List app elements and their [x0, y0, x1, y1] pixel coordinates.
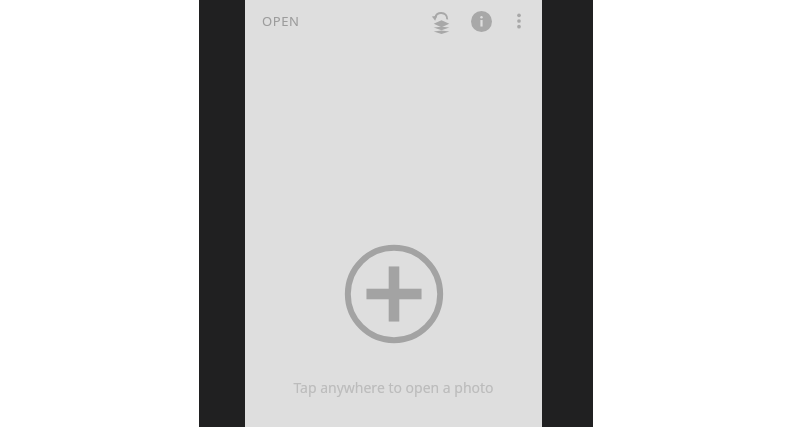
staticText: Tap anywhere to open a photo	[293, 378, 494, 397]
button[interactable]: OPEN	[262, 12, 300, 30]
button[interactable]: OPEN	[245, 0, 542, 427]
button[interactable]: Revert edits	[424, 4, 458, 38]
staticText: OPEN	[262, 12, 300, 30]
button[interactable]: More options	[502, 4, 536, 38]
button[interactable]: Open a photo	[340, 240, 448, 348]
button[interactable]: Info	[464, 4, 498, 38]
